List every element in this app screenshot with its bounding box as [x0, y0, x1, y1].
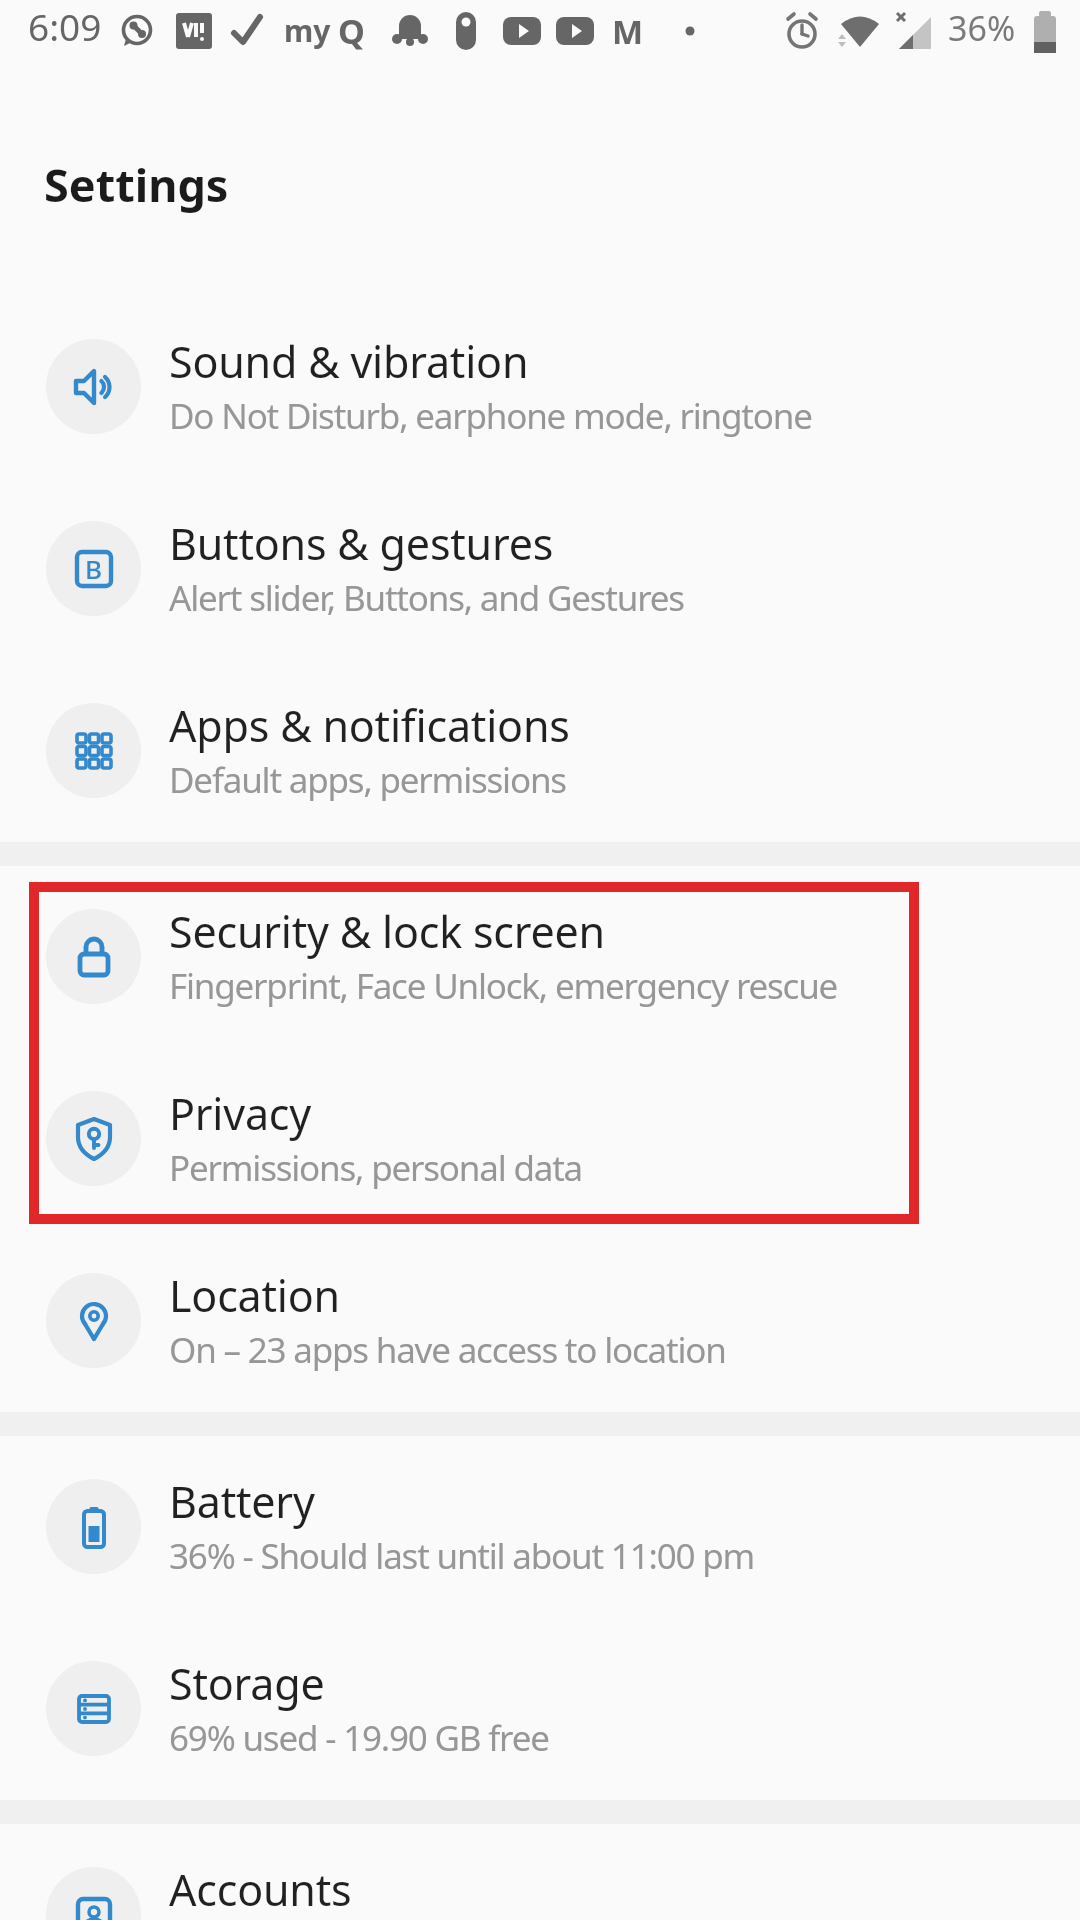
staticText: B	[85, 551, 103, 586]
button[interactable]: Privacy	[0, 1048, 1080, 1230]
button[interactable]: Accounts	[0, 1824, 1080, 1920]
button[interactable]: Storage	[0, 1618, 1080, 1800]
staticText: Battery	[169, 1472, 315, 1531]
staticText: 36% - Should last until about 11:00 pm	[169, 1532, 755, 1580]
staticText: Accounts	[169, 1860, 352, 1919]
staticText: 6:09	[28, 1, 102, 51]
staticText: Location	[169, 1266, 340, 1325]
button[interactable]: Apps & notifications	[0, 660, 1080, 842]
button[interactable]: B	[0, 478, 1080, 660]
staticText: Privacy	[169, 1084, 312, 1143]
staticText: Alert slider, Buttons, and Gestures	[169, 574, 684, 622]
button[interactable]: Battery	[0, 1436, 1080, 1618]
staticText: Apps & notifications	[169, 696, 570, 755]
staticText: Storage	[169, 1654, 325, 1713]
staticText: Fingerprint, Face Unlock, emergency resc…	[169, 962, 838, 1010]
button[interactable]: Location	[0, 1230, 1080, 1412]
staticText: 36%	[948, 5, 1016, 51]
staticText: Q	[338, 8, 365, 54]
staticText: Default apps, permissions	[169, 756, 566, 804]
staticText: Buttons & gestures	[169, 514, 554, 573]
staticText: Permissions, personal data	[169, 1144, 583, 1192]
button[interactable]: Security & lock screen	[0, 866, 1080, 1048]
staticText: Security & lock screen	[169, 902, 605, 961]
staticText: M	[612, 9, 644, 54]
staticText: my	[284, 10, 331, 51]
staticText: 69% used - 19.90 GB free	[169, 1714, 549, 1762]
staticText: Sound & vibration	[169, 332, 529, 391]
staticText: Do Not Disturb, earphone mode, ringtone	[169, 392, 812, 440]
button[interactable]: Sound & vibration	[0, 296, 1080, 478]
staticText: Settings	[44, 154, 229, 215]
staticText: On – 23 apps have access to location	[169, 1326, 726, 1374]
